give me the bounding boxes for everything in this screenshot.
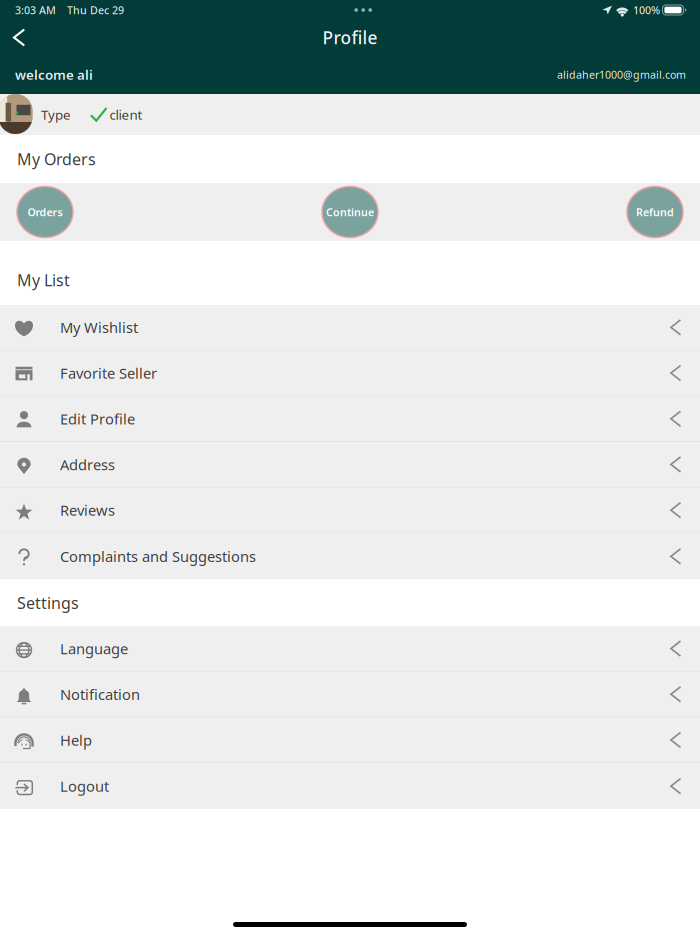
staticText: 100% [633,3,660,17]
staticText: My List [17,269,70,291]
button[interactable]: Complaints and Suggestions [0,533,700,579]
staticText: welcome ali [15,66,93,83]
staticText: Address [60,455,115,474]
button[interactable]: Favorite Seller [0,351,700,396]
button[interactable]: Orders [17,186,73,237]
staticText: Refund [636,205,674,219]
staticText: Notification [60,684,140,704]
button[interactable]: My Wishlist [0,305,700,351]
button[interactable]: Language [0,626,700,672]
button[interactable]: Logout [0,763,700,809]
button[interactable]: Edit Profile [0,396,700,442]
button[interactable]: Continue [322,186,378,237]
staticText: Type [41,106,71,123]
button[interactable]: Back [0,21,36,53]
staticText: My Orders [17,148,96,170]
staticText: Complaints and Suggestions [60,547,256,566]
staticText: client [109,106,142,123]
button[interactable]: Notification [0,672,700,718]
staticText: Logout [60,776,109,796]
button[interactable]: Help [0,718,700,763]
staticText: My Wishlist [60,318,138,337]
staticText: Profile [322,26,377,49]
staticText: Reviews [60,500,115,520]
button[interactable]: Refund [627,186,683,237]
staticText: Thu Dec 29 [67,3,124,17]
staticText: Edit Profile [60,409,135,428]
staticText: Orders [27,205,62,219]
staticText: Continue [326,205,374,219]
staticText: Help [60,730,92,750]
staticText: Favorite Seller [60,363,157,383]
staticText: Language [60,639,128,658]
button[interactable]: Address [0,442,700,488]
staticText: alidaher1000@gmail.com [557,67,686,82]
button[interactable]: Reviews [0,488,700,533]
staticText: Settings [17,592,79,613]
staticText: 3:03 AM [15,3,56,17]
